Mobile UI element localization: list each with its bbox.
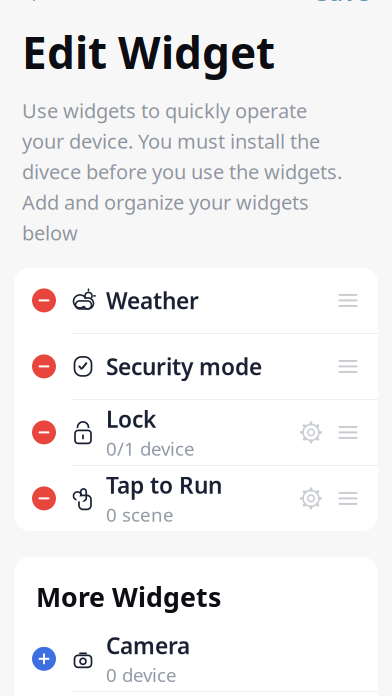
button[interactable]: Security mode: [14, 334, 378, 399]
button[interactable]: Tap to Run: [14, 466, 378, 531]
staticText: 0/1 device: [106, 436, 195, 461]
button[interactable]: Weather: [14, 268, 378, 333]
button[interactable]: Save: [302, 0, 384, 16]
staticText: Camera: [106, 630, 190, 660]
staticText: Save: [316, 0, 370, 8]
staticText: Use widgets to quickly operate your devi…: [22, 97, 342, 246]
staticText: 0 scene: [106, 502, 174, 527]
button[interactable]: Camera: [14, 626, 378, 691]
staticText: Security mode: [106, 351, 262, 381]
button[interactable]: Lock: [14, 400, 378, 465]
staticText: Tap to Run: [106, 470, 222, 500]
staticText: Lock: [106, 404, 156, 434]
button[interactable]: Back: [8, 0, 54, 12]
staticText: Weather: [106, 285, 199, 315]
staticText: 0 device: [106, 662, 177, 687]
staticText: More Widgets: [36, 579, 221, 614]
staticText: Edit Widget: [22, 23, 275, 81]
